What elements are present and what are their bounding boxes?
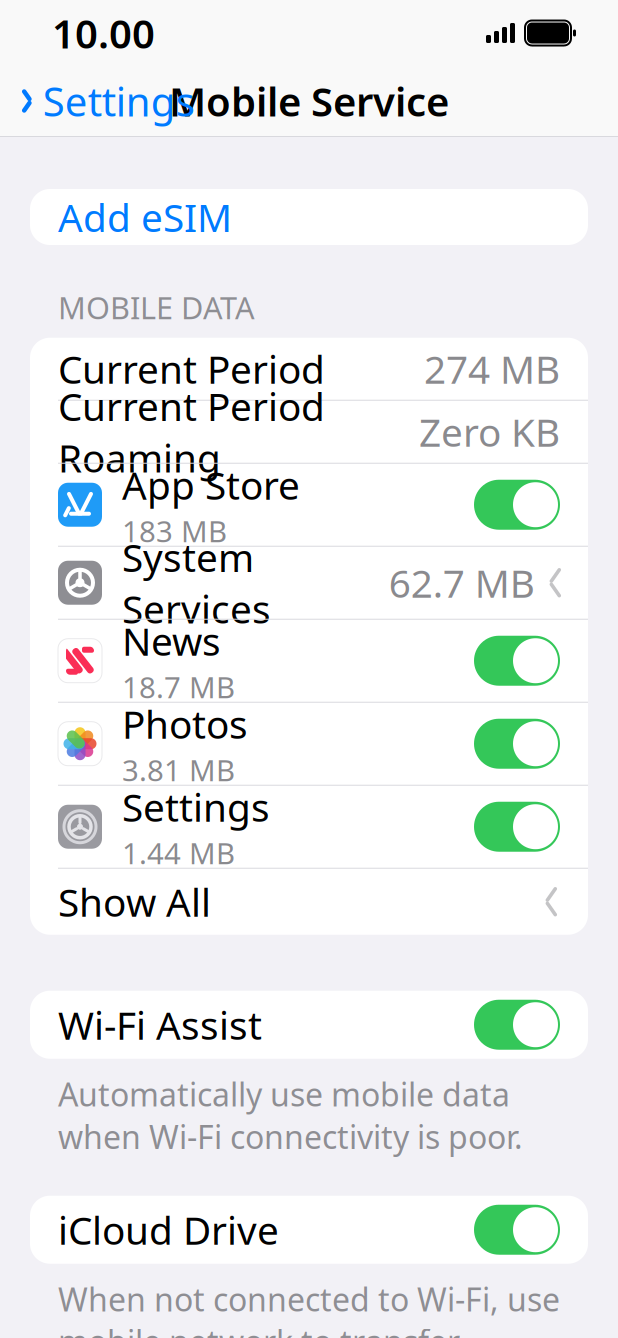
button[interactable]: App Store mobile data (474, 480, 560, 530)
staticText: MOBILE DATA (58, 287, 255, 328)
staticText: App Store (122, 459, 300, 510)
staticText: 3.81 MB (122, 750, 235, 789)
staticText: News (122, 615, 221, 666)
staticText: System Services (122, 531, 271, 634)
staticText: Show All (58, 876, 211, 927)
staticText: Current Period Roaming (58, 380, 325, 483)
staticText: iCloud Drive (58, 1204, 279, 1255)
button[interactable]: Add eSIM (30, 189, 588, 245)
staticText: Current Period (58, 343, 325, 394)
button[interactable]: News mobile data (474, 636, 560, 686)
staticText: Wi-Fi Assist (58, 999, 262, 1050)
button[interactable]: Wi-Fi Assist (474, 1000, 560, 1050)
button[interactable]: System Services (30, 547, 588, 619)
staticText: Settings (43, 74, 195, 127)
button[interactable]: Settings mobile data (474, 802, 560, 852)
staticText: When not connected to Wi-Fi, use mobile … (58, 1278, 560, 1338)
staticText: Mobile Service (169, 74, 449, 127)
staticText: Zero KB (419, 406, 560, 457)
staticText: 1.44 MB (122, 833, 235, 872)
staticText: 274 MB (424, 343, 560, 394)
staticText: Photos (122, 698, 248, 749)
staticText: Settings (122, 781, 270, 832)
button[interactable]: Photos mobile data (474, 719, 560, 769)
staticText: Add eSIM (58, 191, 232, 243)
staticText: 183 MB (122, 511, 227, 550)
staticText: Automatically use mobile data when Wi-Fi… (58, 1073, 523, 1158)
staticText: 10.00 (52, 6, 155, 59)
button[interactable]: Settings (0, 64, 195, 137)
staticText: 62.7 MB (389, 557, 535, 608)
button[interactable]: Show All (30, 869, 588, 935)
staticText: 18.7 MB (122, 667, 235, 706)
button[interactable]: iCloud Drive (474, 1205, 560, 1255)
